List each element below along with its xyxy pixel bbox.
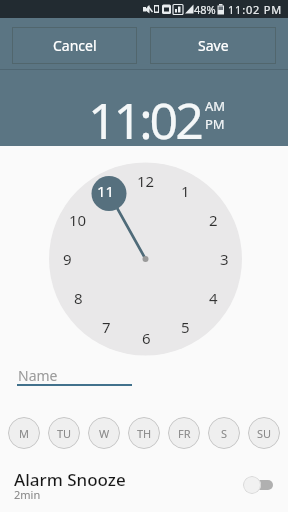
staticText: 6	[142, 328, 151, 346]
staticText: SU	[257, 426, 272, 441]
staticText: AM	[205, 97, 226, 115]
button[interactable]: Save	[150, 27, 276, 64]
staticText: 11:02 PM	[228, 2, 283, 17]
staticText: 3	[220, 249, 229, 267]
button[interactable]: Cancel	[12, 27, 137, 64]
staticText: 12	[137, 171, 155, 189]
button[interactable]: Name	[14, 361, 134, 389]
button[interactable]: SU	[248, 417, 280, 449]
staticText: Cancel	[53, 36, 97, 55]
button[interactable]	[243, 476, 261, 494]
staticText: TU	[57, 426, 72, 441]
button[interactable]: W	[88, 417, 120, 449]
button[interactable]: AM	[205, 97, 226, 133]
staticText: Save	[198, 36, 229, 55]
staticText: 11:02	[88, 86, 201, 154]
staticText: PM	[205, 115, 225, 133]
staticText: 48%	[194, 2, 216, 17]
staticText: 4	[209, 288, 218, 306]
staticText: 11	[97, 181, 115, 199]
button[interactable]: TH	[128, 417, 160, 449]
button[interactable]: FR	[168, 417, 200, 449]
staticText: 1	[181, 181, 190, 199]
staticText: 5	[181, 317, 190, 335]
staticText: 9	[63, 249, 72, 267]
button[interactable]: M	[8, 417, 40, 449]
staticText: TH	[137, 426, 152, 441]
staticText: M	[19, 426, 29, 441]
staticText: S	[221, 426, 228, 441]
staticText: Alarm Snooze	[14, 468, 126, 491]
button[interactable]: TU	[48, 417, 80, 449]
staticText: 2	[209, 210, 218, 228]
staticText: W	[99, 426, 110, 441]
button[interactable]: S	[208, 417, 240, 449]
staticText: 10	[69, 210, 87, 228]
staticText: Name	[18, 366, 58, 385]
staticText: 2min	[14, 487, 41, 502]
staticText: 7	[102, 317, 111, 335]
staticText: 8	[74, 288, 83, 306]
staticText: FR	[178, 426, 191, 441]
button[interactable]: Alarm Snooze	[0, 464, 288, 512]
